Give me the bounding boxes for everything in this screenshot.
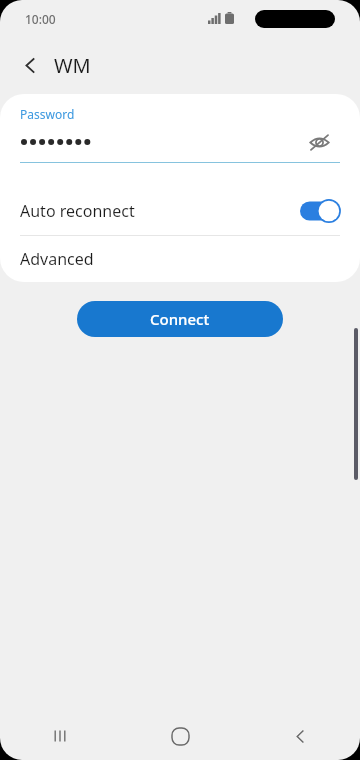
button[interactable]: Home [120, 712, 240, 760]
staticText: WM [54, 52, 91, 79]
staticText: Advanced [20, 248, 94, 270]
button[interactable]: Back [10, 45, 50, 85]
button[interactable]: Show password [298, 122, 340, 162]
button[interactable]: Connect [77, 301, 283, 337]
staticText: Password [20, 106, 75, 122]
staticText: Connect [150, 309, 210, 329]
button[interactable]: Advanced [0, 236, 360, 282]
button[interactable]: Auto reconnect [0, 187, 360, 235]
button[interactable]: Recent apps [0, 712, 120, 760]
staticText: Auto reconnect [20, 200, 135, 222]
button[interactable]: Back [240, 712, 360, 760]
staticText: 10:00 [25, 11, 56, 27]
